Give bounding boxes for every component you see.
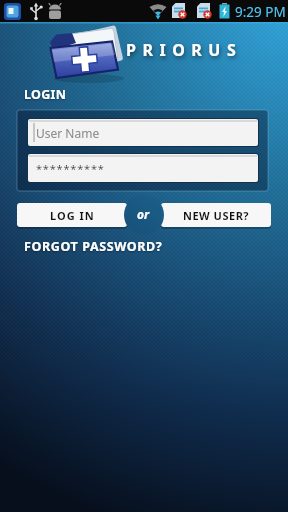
staticText: or (137, 206, 150, 222)
button[interactable]: ********** (28, 154, 258, 182)
button[interactable]: LOG IN (17, 203, 127, 227)
button[interactable]: FORGOT PASSWORD? (24, 238, 163, 255)
button[interactable]: User Name (28, 119, 258, 146)
staticText: User Name (36, 125, 100, 141)
staticText: LOG IN (50, 208, 95, 223)
staticText: PRIORUS (126, 39, 243, 61)
staticText: ********** (36, 161, 105, 176)
button[interactable]: NEW USER? (161, 203, 271, 227)
staticText: NEW USER? (183, 208, 250, 223)
staticText: FORGOT PASSWORD? (24, 238, 163, 255)
staticText: LOGIN (24, 86, 67, 103)
staticText: 9:29 PM (235, 3, 286, 21)
